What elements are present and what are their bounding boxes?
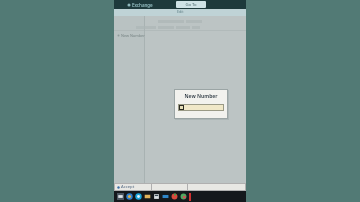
staticText: Go To	[185, 2, 197, 8]
staticText: New Number	[121, 33, 145, 38]
staticText: Accept	[121, 184, 135, 190]
button[interactable]: Files	[143, 191, 152, 202]
button[interactable]: Exchange	[127, 2, 153, 8]
staticText: Exchange	[132, 2, 153, 8]
button[interactable]: Media player	[170, 191, 179, 202]
button[interactable]: Accept	[117, 183, 151, 191]
button[interactable]	[153, 183, 187, 191]
button[interactable]: Go To	[176, 1, 206, 8]
button[interactable]: Calculator	[152, 191, 161, 202]
button[interactable]: Browser	[125, 191, 134, 202]
button[interactable]: Photos	[179, 191, 188, 202]
button[interactable]: Start menu	[116, 191, 125, 202]
button[interactable]: New Number	[117, 33, 145, 38]
staticText: Edit	[177, 9, 184, 14]
staticText: New Number	[184, 93, 218, 100]
button[interactable]	[189, 183, 246, 191]
button[interactable]: Chrome	[134, 191, 143, 202]
button[interactable]: Field icon	[178, 104, 224, 111]
other: Field icon	[178, 104, 184, 111]
button[interactable]: Mail	[161, 191, 170, 202]
